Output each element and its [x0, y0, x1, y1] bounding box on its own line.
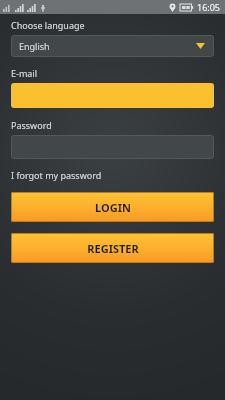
- button[interactable]: [11, 135, 214, 159]
- staticText: English: [19, 40, 50, 52]
- button[interactable]: REGISTER: [11, 233, 214, 263]
- button[interactable]: [11, 83, 214, 108]
- staticText: REGISTER: [87, 241, 139, 256]
- button[interactable]: I forgot my password: [11, 169, 102, 181]
- staticText: LOGIN: [95, 200, 131, 215]
- button[interactable]: English: [11, 35, 214, 57]
- button[interactable]: LOGIN: [11, 192, 214, 222]
- staticText: Password: [11, 119, 52, 131]
- staticText: Choose language: [11, 19, 85, 31]
- staticText: E-mail: [11, 67, 38, 79]
- other: Open language list: [194, 40, 206, 52]
- staticText: I forgot my password: [11, 169, 102, 181]
- staticText: 16:05: [197, 1, 221, 13]
